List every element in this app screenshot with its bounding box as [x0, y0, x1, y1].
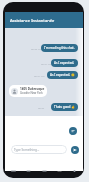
staticText: 08:31 AM [34, 74, 45, 77]
button[interactable]: Send [71, 146, 79, 154]
staticText: 1405 Dubreuque [20, 87, 45, 91]
staticText: Type Something... [14, 148, 40, 152]
staticText: I'm reading this chat. [44, 46, 75, 50]
button[interactable]: Thats good 👍 [51, 103, 78, 111]
staticText: As I expected. 🙂 [50, 73, 75, 77]
button[interactable]: Type Something... [11, 145, 67, 154]
staticText: 08:30 AM [31, 47, 42, 50]
button[interactable]: 1405 Dubreuque [9, 85, 47, 97]
button[interactable]: As I expected. [51, 59, 78, 67]
button[interactable]: Assistance Instantanée [5, 12, 83, 28]
button[interactable]: New message [69, 127, 77, 135]
staticText: As I expected. [54, 61, 75, 65]
button[interactable]: As I expected. 🙂 [47, 71, 78, 79]
staticText: Assistance Instantanée [10, 18, 55, 23]
staticText: 08:34 [38, 106, 45, 109]
button[interactable]: I'm reading this chat. [41, 44, 78, 52]
staticText: Goodte New York [20, 91, 43, 95]
staticText: Thats good 👍 [54, 105, 75, 109]
staticText: 08:31 AM [41, 62, 52, 65]
